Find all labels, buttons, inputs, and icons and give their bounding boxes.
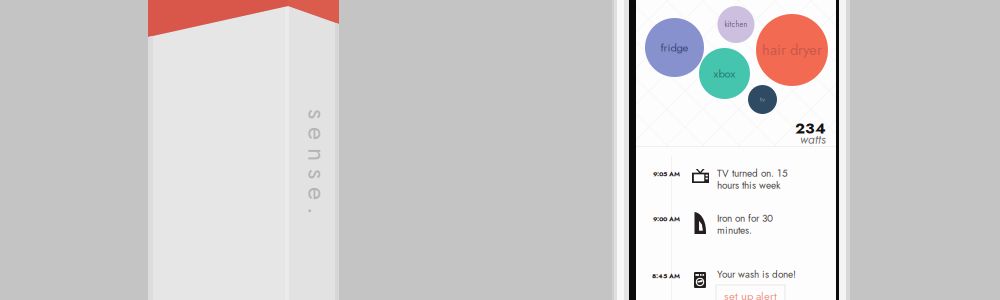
staticText: TV turned on. 15 [717,166,788,180]
staticText: hours this week [717,178,780,192]
button[interactable]: set up alert [716,285,785,300]
staticText: xbox [713,65,735,82]
staticText: fridge [660,39,688,56]
staticText: Your wash is done! [717,267,796,281]
staticText: 8:45 AM [652,271,680,281]
staticText: kitchen [724,19,747,30]
staticText: 234 [795,117,826,139]
staticText: sense. [264,144,370,180]
staticText: Iron on for 30 [717,211,773,225]
staticText: tv [760,95,765,104]
staticText: minutes. [717,223,752,237]
staticText: watts [800,131,826,148]
staticText: hair dryer [762,39,822,61]
staticText: set up alert [724,288,777,300]
staticText: 9:05 AM [653,169,680,179]
staticText: 9:00 AM [653,214,680,224]
